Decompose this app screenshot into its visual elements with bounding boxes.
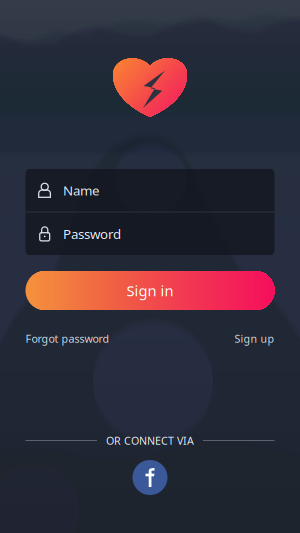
button[interactable]: Sign up	[234, 331, 274, 346]
staticText: Password	[63, 225, 121, 243]
staticText: Forgot password	[25, 331, 109, 346]
staticText: Name	[63, 181, 100, 199]
button[interactable]: Sign in with Facebook	[132, 460, 167, 495]
button[interactable]: Sign in	[25, 271, 274, 310]
button[interactable]: Forgot password	[25, 331, 109, 346]
staticText: OR CONNECT VIA	[106, 433, 194, 448]
staticText: Sign in	[126, 281, 173, 300]
staticText: Sign up	[234, 331, 274, 346]
